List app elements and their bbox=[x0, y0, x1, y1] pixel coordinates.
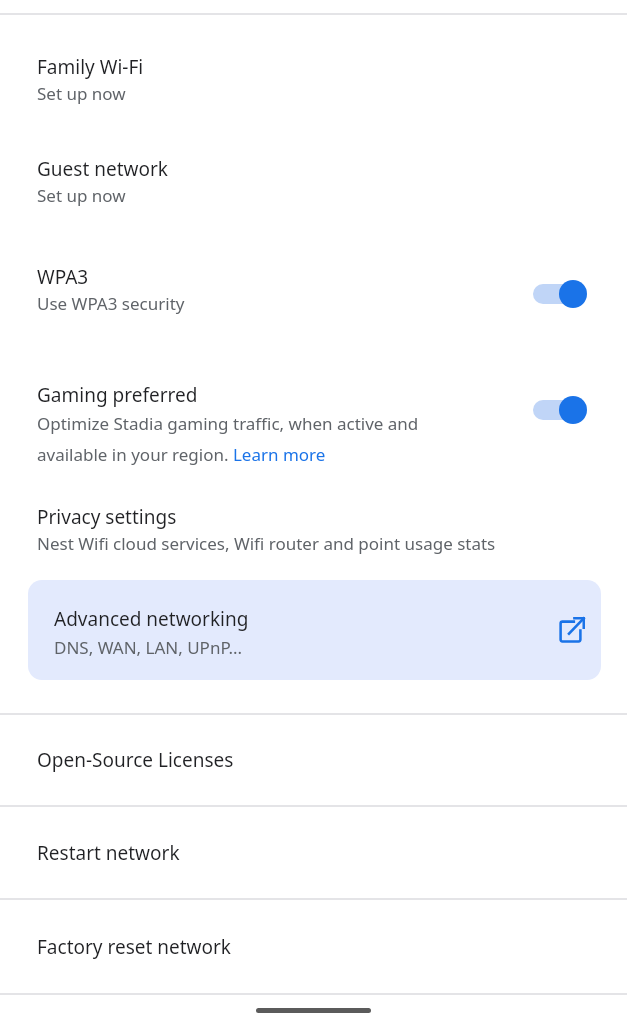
staticText: Factory reset network bbox=[37, 934, 232, 960]
button[interactable]: Advanced networking bbox=[28, 580, 601, 680]
button[interactable]: Toggle bbox=[533, 277, 595, 311]
staticText: WPA3 bbox=[37, 264, 89, 290]
button[interactable]: Gaming preferred bbox=[0, 372, 627, 470]
staticText: Gaming preferred bbox=[37, 382, 198, 408]
staticText: Open-Source Licenses bbox=[37, 747, 234, 773]
button[interactable]: Restart network bbox=[0, 807, 627, 898]
button[interactable]: Privacy settings bbox=[0, 492, 627, 564]
staticText: Guest network bbox=[37, 156, 168, 182]
staticText: Set up now bbox=[37, 184, 126, 207]
staticText: Set up now bbox=[37, 82, 126, 105]
button[interactable]: Open-Source Licenses bbox=[0, 715, 627, 805]
staticText: Use WPA3 security bbox=[37, 292, 185, 315]
staticText: Optimize Stadia gaming traffic, when act… bbox=[37, 412, 467, 466]
button[interactable]: Family Wi-Fi bbox=[0, 42, 627, 102]
button[interactable]: Toggle bbox=[533, 393, 595, 427]
staticText: Restart network bbox=[37, 840, 180, 866]
staticText: Nest Wifi cloud services, Wifi router an… bbox=[37, 532, 496, 555]
staticText: Advanced networking bbox=[54, 606, 249, 632]
staticText: DNS, WAN, LAN, UPnP... bbox=[54, 636, 243, 659]
button[interactable]: WPA3 bbox=[0, 252, 627, 322]
button[interactable]: Factory reset network bbox=[0, 900, 627, 993]
button[interactable]: Guest network bbox=[0, 144, 627, 204]
staticText: Privacy settings bbox=[37, 504, 177, 530]
staticText: Family Wi-Fi bbox=[37, 54, 144, 80]
